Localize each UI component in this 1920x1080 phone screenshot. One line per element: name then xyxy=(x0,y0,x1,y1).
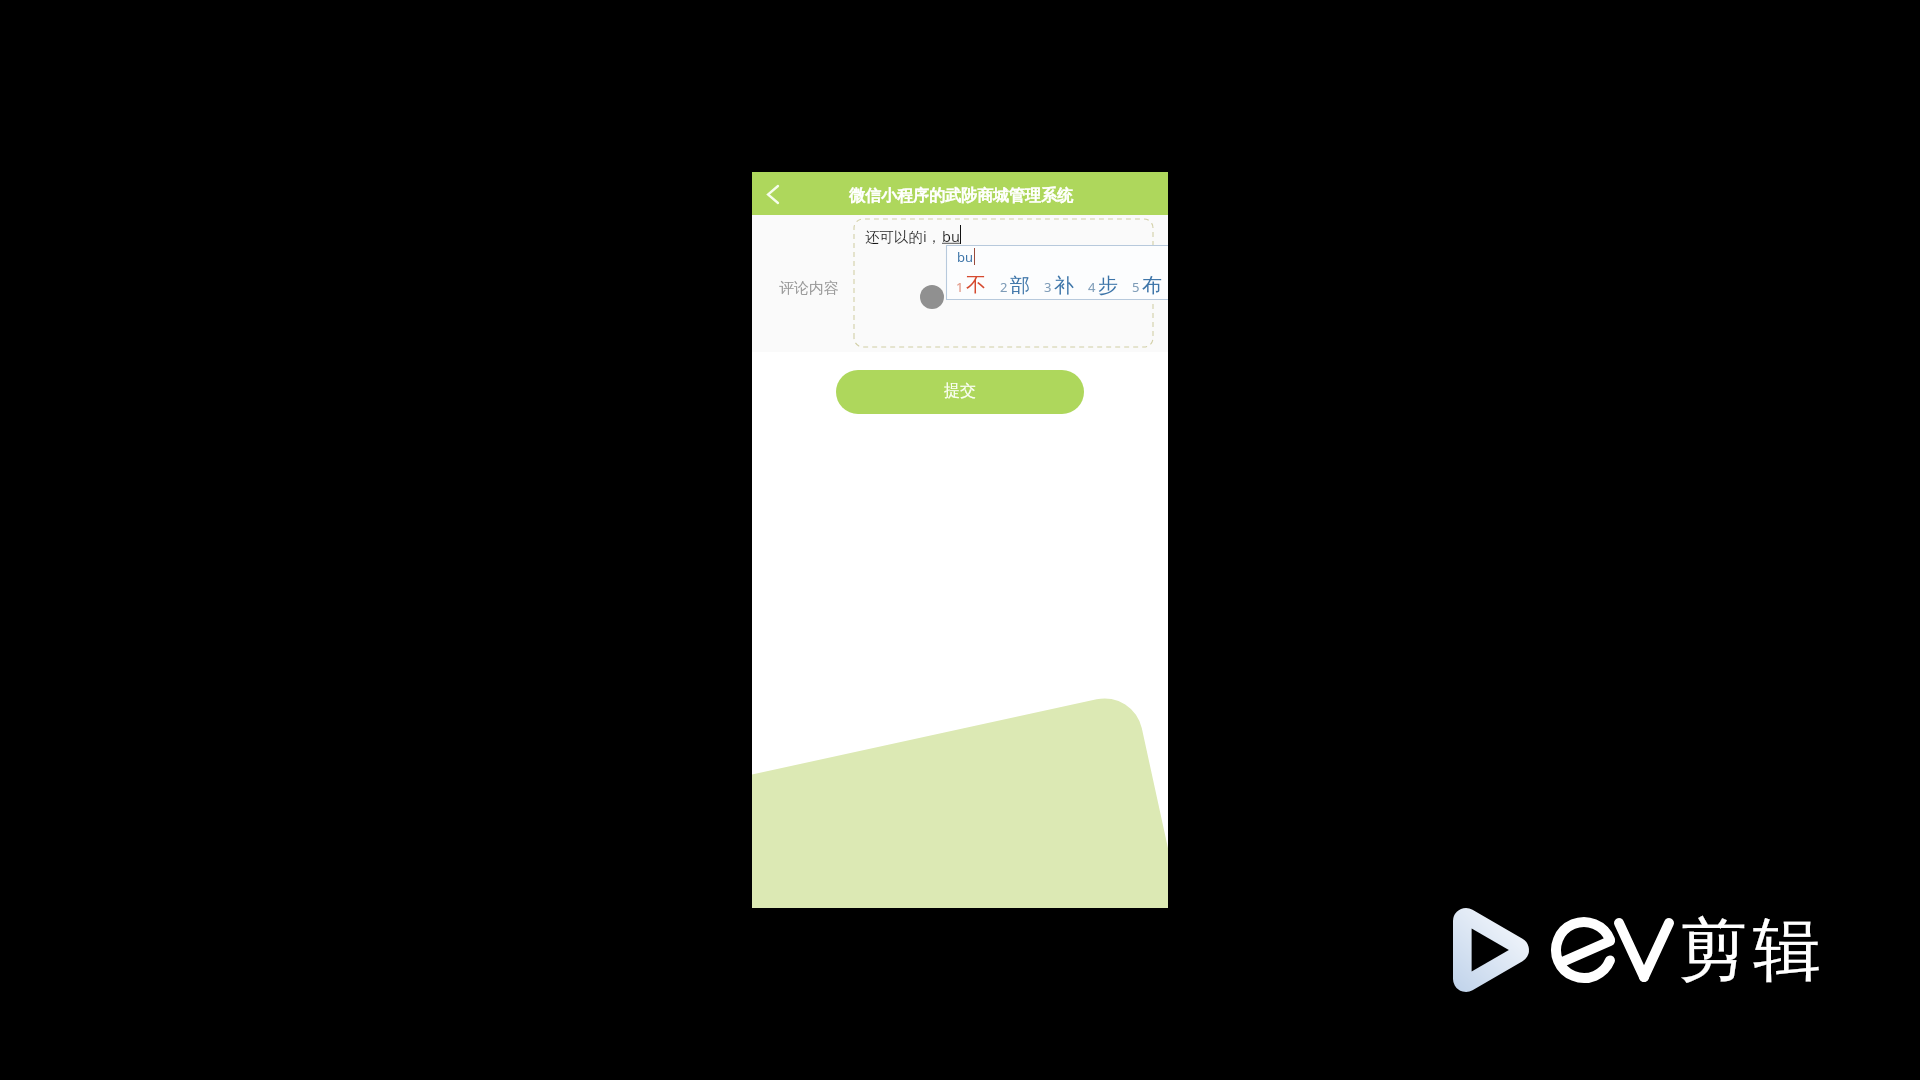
button[interactable]: 4 xyxy=(1088,273,1118,298)
button[interactable]: 提交 xyxy=(836,370,1084,414)
staticText: 提交 xyxy=(944,381,976,401)
button[interactable]: 1 xyxy=(956,273,986,298)
button[interactable]: 还可以的i， xyxy=(854,219,1153,347)
staticText: 微信小程序的武陟商城管理系统 xyxy=(849,186,1073,206)
button[interactable]: 5 xyxy=(1132,273,1162,298)
staticText: 剪辑 xyxy=(1676,908,1824,994)
staticText: 4 xyxy=(1088,278,1096,296)
staticText: 2 xyxy=(1000,278,1008,296)
staticText: 3 xyxy=(1044,278,1052,296)
staticText: 步 xyxy=(1098,273,1118,298)
staticText: 布 xyxy=(1142,273,1162,298)
staticText: bu xyxy=(942,226,960,246)
staticText: 1 xyxy=(956,278,964,296)
staticText: 5 xyxy=(1132,278,1140,296)
staticText: 不 xyxy=(966,273,986,298)
button[interactable]: 2 xyxy=(1000,273,1030,298)
staticText: 补 xyxy=(1054,273,1074,298)
staticText: 部 xyxy=(1010,273,1030,298)
button[interactable]: Back xyxy=(754,175,792,213)
staticText: 评论内容 xyxy=(779,279,839,298)
staticText: bu xyxy=(957,248,974,266)
button[interactable]: 3 xyxy=(1044,273,1074,298)
staticText: 还可以的i， xyxy=(865,226,942,246)
